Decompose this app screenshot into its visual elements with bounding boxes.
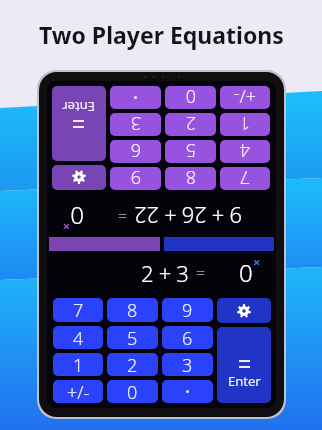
staticText: 2 + 3	[141, 258, 189, 288]
button[interactable]: 1	[220, 113, 270, 136]
staticText: +/-	[233, 86, 256, 109]
staticText: +/-	[67, 380, 90, 403]
button[interactable]: Settings	[52, 165, 106, 190]
staticText: 7	[73, 298, 84, 322]
staticText: 3	[130, 113, 141, 136]
button[interactable]: +/-	[53, 380, 103, 403]
button[interactable]: 3	[110, 113, 161, 136]
button[interactable]: 3	[162, 353, 213, 376]
button[interactable]: Enter	[217, 327, 271, 403]
button[interactable]: +/-	[220, 86, 270, 109]
staticText: 2	[185, 113, 196, 136]
staticText: 8	[127, 298, 138, 322]
staticText: 7	[239, 167, 250, 190]
staticText: 2	[127, 353, 138, 376]
staticText: 5	[127, 326, 138, 349]
staticText: ×	[62, 218, 70, 236]
button[interactable]: 8	[165, 167, 216, 190]
staticText: 5	[185, 140, 196, 163]
button[interactable]: 6	[110, 140, 161, 163]
staticText: 0	[70, 200, 84, 233]
button[interactable]: 2	[107, 353, 158, 376]
staticText: ×	[253, 253, 261, 271]
button[interactable]: 0	[165, 86, 216, 109]
staticText: Enter	[62, 98, 95, 116]
button[interactable]: 7	[220, 167, 270, 190]
staticText: Enter	[228, 372, 261, 390]
staticText: =	[117, 205, 127, 227]
staticText: 6	[182, 326, 193, 349]
button[interactable]: 7	[53, 298, 103, 322]
staticText: 8	[185, 167, 196, 190]
button[interactable]: 0	[107, 380, 158, 403]
button[interactable]: 5	[165, 140, 216, 163]
button[interactable]: 9	[110, 167, 161, 190]
button[interactable]: 1	[53, 353, 103, 376]
staticText: 9 + 26 + 22	[134, 201, 242, 231]
button[interactable]: 2	[165, 113, 216, 136]
staticText: 6	[130, 140, 141, 163]
button[interactable]: 8	[107, 298, 158, 322]
button[interactable]	[110, 86, 161, 109]
staticText: 4	[73, 326, 84, 349]
staticText: 0	[127, 380, 138, 403]
button[interactable]: 4	[220, 140, 270, 163]
staticText: 9	[130, 167, 141, 190]
staticText: 0	[185, 86, 196, 109]
staticText: 0	[239, 256, 253, 289]
button[interactable]: 4	[53, 326, 103, 349]
staticText: =	[196, 262, 206, 284]
button[interactable]: Enter	[52, 86, 106, 161]
button[interactable]: Settings	[217, 298, 271, 323]
staticText: 3	[182, 353, 193, 376]
staticText: Two Player Equations	[39, 19, 284, 50]
staticText: 1	[73, 353, 84, 376]
button[interactable]: 5	[107, 326, 158, 349]
button[interactable]: 6	[162, 326, 213, 349]
staticText: 1	[239, 113, 250, 136]
staticText: 4	[239, 140, 250, 163]
button[interactable]: 9	[162, 298, 213, 322]
staticText: 9	[182, 298, 193, 322]
button[interactable]	[162, 380, 213, 403]
